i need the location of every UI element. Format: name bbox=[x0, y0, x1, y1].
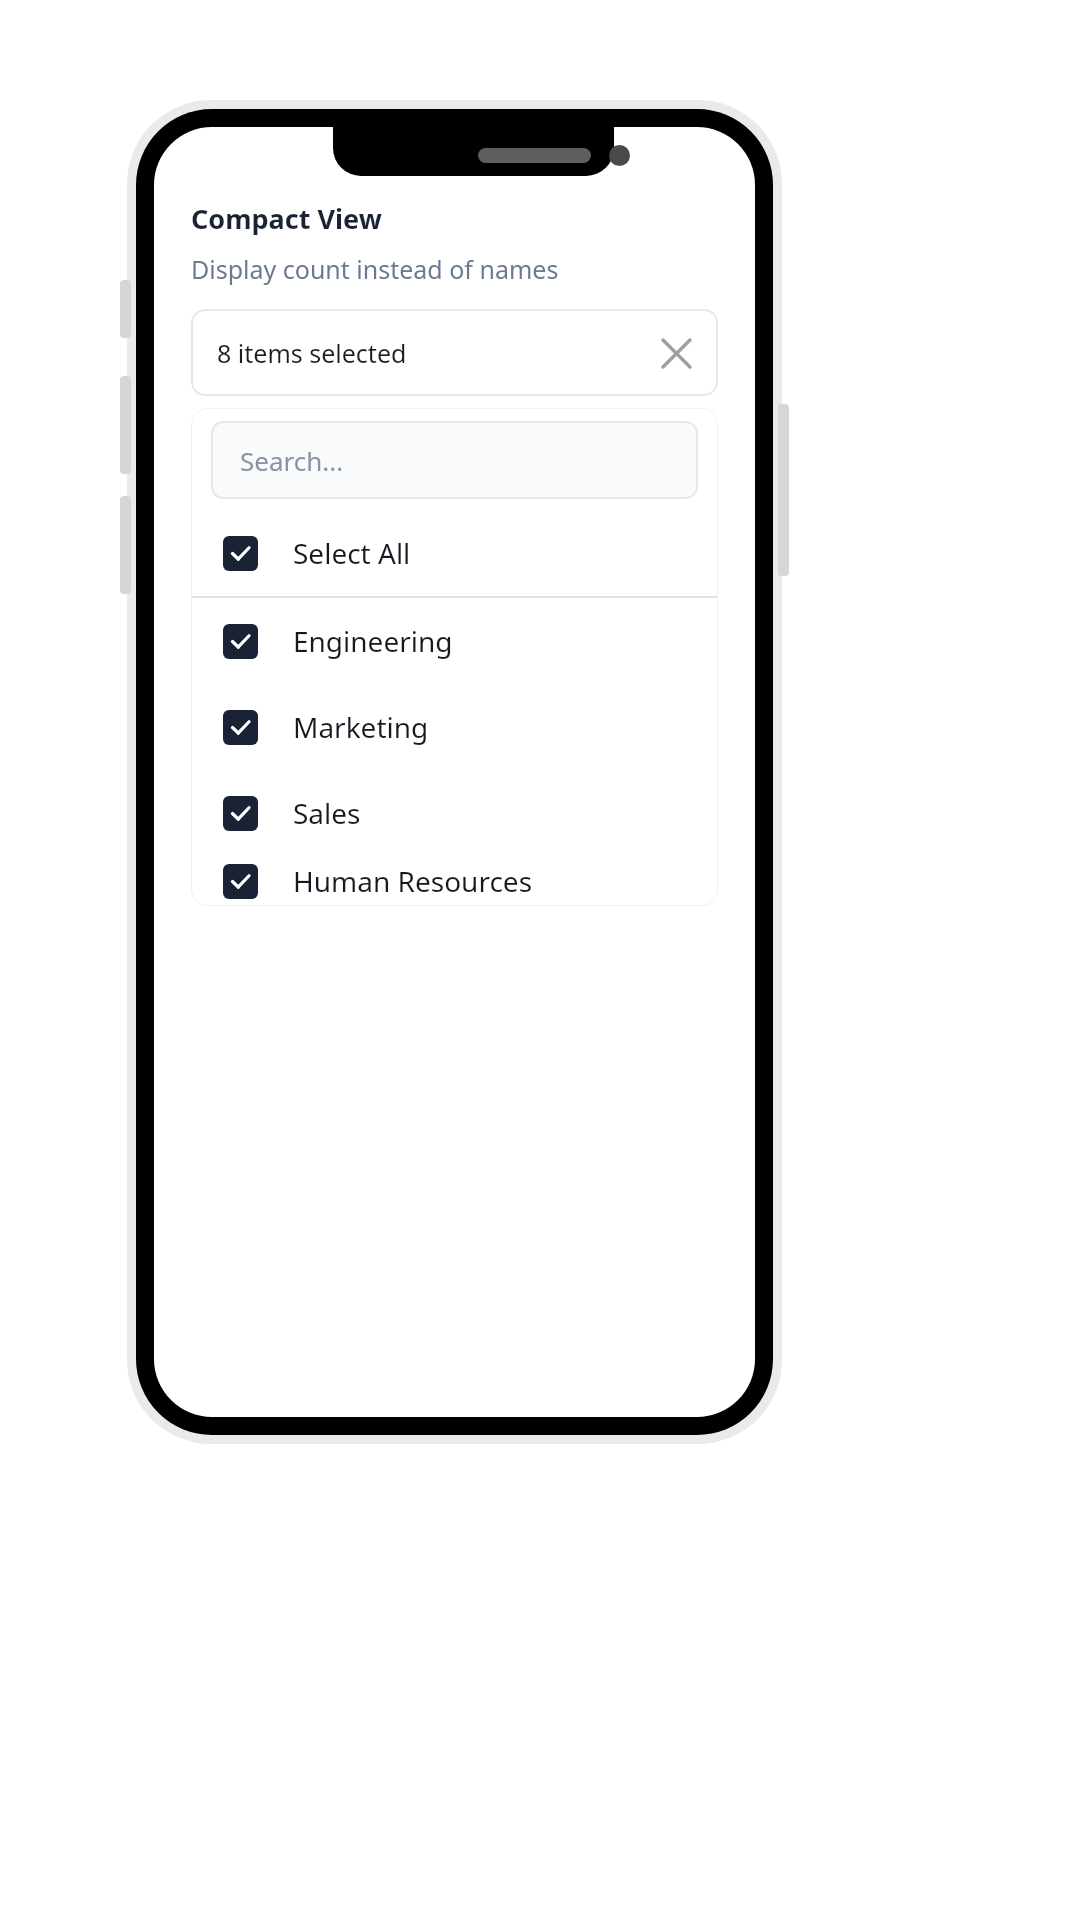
button[interactable]: Sales bbox=[191, 770, 718, 856]
staticText: Search... bbox=[240, 443, 344, 478]
staticText: Select All bbox=[293, 534, 411, 572]
staticText: 8 items selected bbox=[217, 336, 407, 370]
button[interactable]: Human Resources bbox=[191, 856, 718, 906]
button[interactable]: Engineering bbox=[191, 598, 718, 684]
button[interactable]: Select All bbox=[191, 510, 718, 596]
button[interactable]: Search... bbox=[211, 421, 698, 499]
staticText: Sales bbox=[293, 794, 361, 832]
staticText: Human Resources bbox=[293, 862, 533, 900]
staticText: Marketing bbox=[293, 708, 429, 746]
staticText: Engineering bbox=[293, 622, 453, 660]
button[interactable]: Clear selection bbox=[654, 331, 698, 375]
staticText: Display count instead of names bbox=[191, 252, 559, 286]
button[interactable]: Marketing bbox=[191, 684, 718, 770]
button[interactable]: 8 items selected bbox=[191, 309, 718, 396]
staticText: Compact View bbox=[191, 200, 382, 237]
